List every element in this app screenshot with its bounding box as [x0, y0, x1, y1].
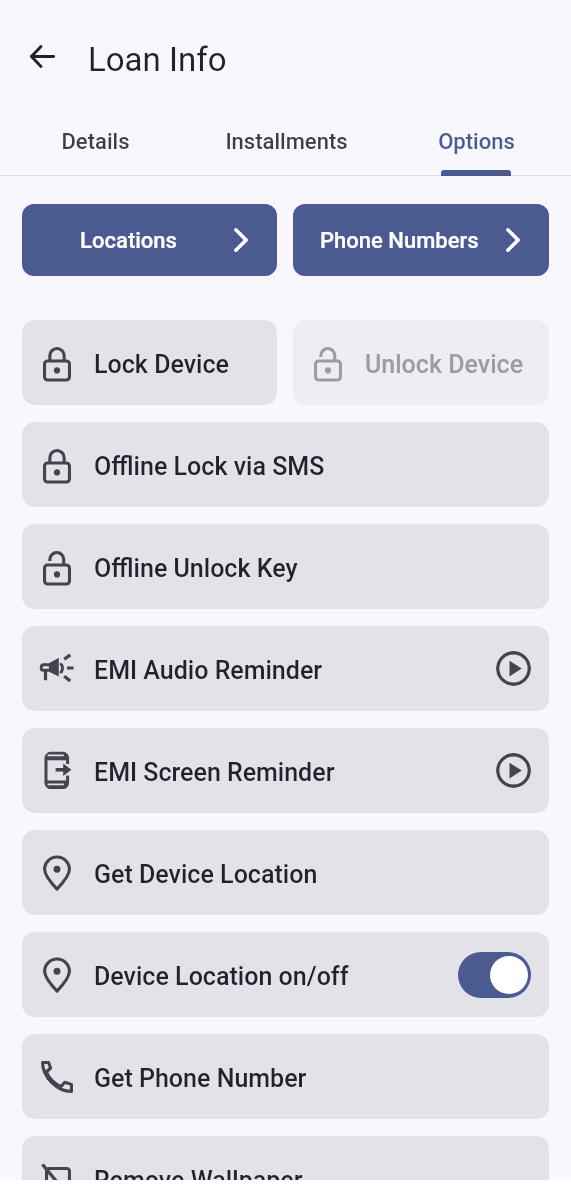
button[interactable]: Play [496, 753, 531, 788]
staticText: Unlock Device [365, 350, 524, 379]
button[interactable]: Locations [22, 204, 277, 276]
staticText: Get Phone Number [94, 1064, 307, 1093]
button[interactable]: Offline Unlock Key [22, 524, 549, 609]
button[interactable]: Lock Device [22, 320, 277, 405]
button[interactable]: Remove Wallpaper [22, 1136, 549, 1195]
staticText: Loan Info [88, 40, 227, 79]
staticText: Device Location on/off [94, 962, 349, 991]
button[interactable]: Installments [191, 110, 381, 174]
staticText: Lock Device [94, 350, 230, 379]
staticText: EMI Audio Reminder [94, 656, 323, 685]
staticText: Get Device Location [94, 860, 318, 889]
staticText: Phone Numbers [320, 228, 479, 254]
button[interactable]: Back [14, 28, 70, 84]
button[interactable]: EMI Screen Reminder [22, 728, 549, 813]
staticText: EMI Screen Reminder [94, 758, 335, 787]
button[interactable]: Get Phone Number [22, 1034, 549, 1119]
staticText: Installments [225, 129, 348, 155]
staticText: Offline Lock via SMS [94, 452, 325, 481]
button[interactable]: Options [381, 110, 571, 174]
button[interactable]: EMI Audio Reminder [22, 626, 549, 711]
staticText: Details [61, 129, 130, 155]
staticText: Options [438, 129, 515, 155]
button[interactable]: Phone Numbers [293, 204, 549, 276]
button[interactable]: Offline Lock via SMS [22, 422, 549, 507]
button[interactable]: Device Location on/off [22, 932, 549, 1017]
staticText: Locations [80, 228, 177, 254]
button[interactable]: Play [496, 651, 531, 686]
staticText: Offline Unlock Key [94, 554, 298, 583]
button[interactable]: Details [0, 110, 191, 174]
button[interactable]: Unlock Device [293, 320, 549, 405]
staticText: Remove Wallpaper [94, 1166, 303, 1195]
button[interactable]: Get Device Location [22, 830, 549, 915]
button[interactable]: Device location toggle [458, 952, 531, 998]
